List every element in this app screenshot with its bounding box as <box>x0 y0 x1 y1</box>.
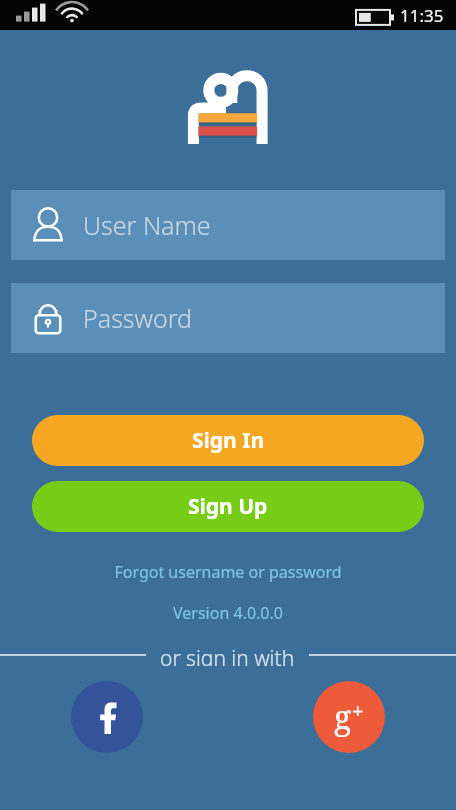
staticText: Password <box>83 301 192 335</box>
staticText: or sign in with <box>160 644 295 666</box>
button[interactable]: Forgot username or password <box>0 557 456 587</box>
staticText: User Name <box>83 208 211 242</box>
button[interactable]: Password <box>11 283 445 353</box>
button[interactable]: Sign In <box>32 415 424 466</box>
staticText: Version 4.0.0.0 <box>173 602 283 624</box>
button[interactable]: Sign in with Facebook <box>71 681 143 753</box>
staticText: Sign In <box>192 426 265 455</box>
staticText: 11:35 <box>400 4 444 27</box>
button[interactable]: User Name <box>11 190 445 260</box>
button[interactable]: Sign in with Google Plus <box>313 681 385 753</box>
staticText: Forgot username or password <box>114 561 342 583</box>
staticText: g <box>334 695 352 739</box>
staticText: Sign Up <box>188 492 268 521</box>
button[interactable]: Sign Up <box>32 481 424 532</box>
staticText: + <box>352 697 364 724</box>
